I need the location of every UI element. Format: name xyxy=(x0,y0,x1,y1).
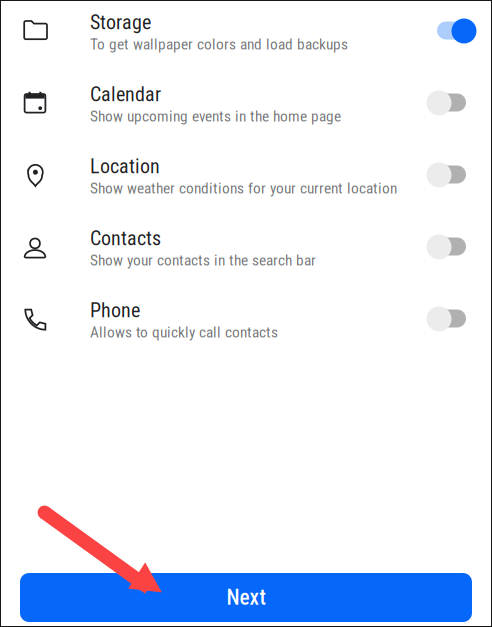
staticText: Phone xyxy=(90,299,140,322)
button[interactable]: Off xyxy=(0,212,492,284)
staticText: Next xyxy=(226,585,265,610)
staticText: Show upcoming events in the home page xyxy=(90,107,341,125)
staticText: Allows to quickly call contacts xyxy=(90,323,278,341)
button[interactable]: Off xyxy=(0,140,492,212)
staticText: Show weather conditions for your current… xyxy=(90,179,397,197)
staticText: Storage xyxy=(90,11,151,34)
button[interactable]: Off xyxy=(0,284,492,356)
staticText: Location xyxy=(90,155,160,178)
staticText: Show your contacts in the search bar xyxy=(90,251,316,269)
button[interactable]: Off xyxy=(0,68,492,140)
staticText: To get wallpaper colors and load backups xyxy=(90,35,348,53)
button[interactable]: On xyxy=(0,0,492,68)
button[interactable]: Next xyxy=(20,573,472,622)
staticText: Contacts xyxy=(90,227,161,250)
staticText: Calendar xyxy=(90,83,161,106)
